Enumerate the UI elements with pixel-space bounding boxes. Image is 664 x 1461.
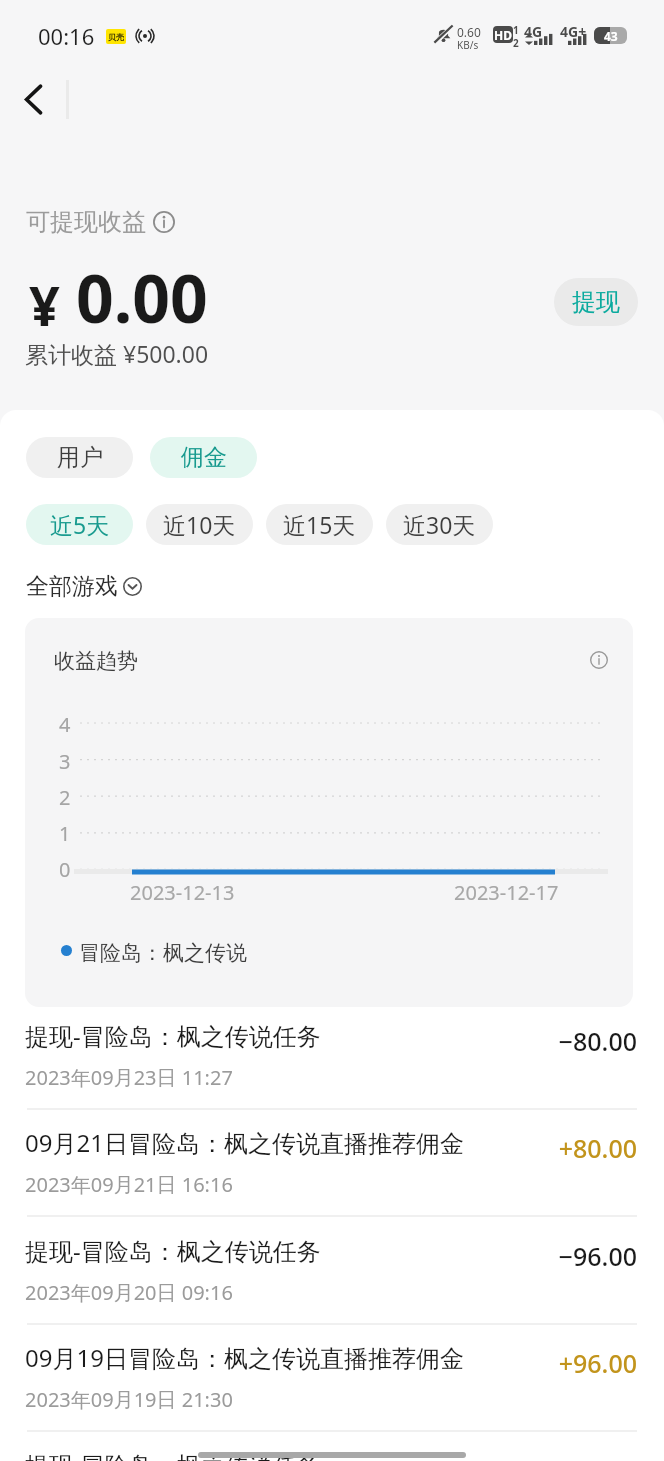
- staticText: 09月21日冒险岛：枫之传说直播推荐佣金: [25, 1126, 464, 1159]
- staticText: 4G: [524, 22, 543, 41]
- staticText: 2023年09月19日 21:30: [25, 1386, 233, 1413]
- button[interactable]: 近5天: [26, 504, 133, 545]
- staticText: 3: [59, 748, 71, 775]
- staticText: −80.00: [430, 1024, 637, 1058]
- button[interactable]: 09月21日冒险岛：枫之传说直播推荐佣金: [0, 1124, 664, 1231]
- staticText: 佣金: [181, 443, 227, 472]
- staticText: 0: [59, 856, 71, 883]
- staticText: −96.00: [430, 1239, 637, 1273]
- staticText: 2023-12-17: [454, 879, 559, 906]
- staticText: 09月19日冒险岛：枫之传说直播推荐佣金: [25, 1341, 464, 1374]
- staticText: 冒险岛：枫之传说: [79, 940, 247, 966]
- staticText: 全部游戏: [26, 572, 118, 601]
- staticText: 近15天: [283, 509, 356, 540]
- button[interactable]: 全部游戏: [26, 572, 142, 601]
- staticText: 4: [59, 711, 71, 738]
- button[interactable]: 用户: [26, 437, 133, 478]
- staticText: +96.00: [430, 1346, 637, 1380]
- button[interactable]: 提现-冒险岛：枫之传说任务: [0, 1232, 664, 1339]
- staticText: 2023年09月20日 09:16: [25, 1279, 233, 1306]
- staticText: 提现-冒险岛：枫之传说任务: [25, 1234, 321, 1267]
- staticText: 00:16: [38, 21, 95, 51]
- staticText: 用户: [57, 443, 103, 472]
- button[interactable]: Back: [4, 70, 62, 128]
- staticText: 近5天: [50, 509, 110, 540]
- staticText: 近10天: [163, 509, 236, 540]
- staticText: 可提现收益: [26, 207, 146, 237]
- staticText: 1: [59, 820, 71, 847]
- staticText: +80.00: [430, 1131, 637, 1165]
- staticText: 0.00: [76, 252, 208, 342]
- button[interactable]: 佣金: [150, 437, 257, 478]
- button[interactable]: 09月19日冒险岛：枫之传说直播推荐佣金: [0, 1339, 664, 1446]
- staticText: 4G+: [560, 22, 587, 41]
- staticText: −96.00: [430, 1453, 637, 1461]
- staticText: 2023年09月23日 11:27: [25, 1064, 233, 1091]
- button[interactable]: 近15天: [266, 504, 373, 545]
- staticText: 贝壳: [108, 32, 124, 42]
- staticText: 收益趋势: [54, 648, 138, 674]
- button[interactable]: 提现-冒险岛：枫之传说任务: [0, 1446, 664, 1461]
- staticText: 2023年09月21日 16:16: [25, 1171, 233, 1198]
- staticText: 提现-冒险岛：枫之传说任务: [25, 1448, 321, 1461]
- staticText: 0.60: [457, 24, 481, 40]
- staticText: 43: [604, 28, 618, 44]
- staticText: 近30天: [403, 509, 476, 540]
- button[interactable]: 提现: [554, 278, 638, 326]
- button[interactable]: 提现-冒险岛：枫之传说任务: [0, 1017, 664, 1124]
- staticText: 2: [59, 784, 71, 811]
- button[interactable]: 近10天: [146, 504, 253, 545]
- button[interactable]: 近30天: [386, 504, 493, 545]
- staticText: KB/s: [457, 38, 479, 52]
- staticText: 提现: [572, 287, 620, 317]
- staticText: 提现-冒险岛：枫之传说任务: [25, 1019, 321, 1052]
- staticText: 2: [513, 36, 519, 50]
- staticText: 1: [513, 23, 519, 37]
- staticText: ¥: [29, 268, 60, 342]
- staticText: 2023-12-13: [130, 879, 235, 906]
- staticText: 累计收益 ¥500.00: [25, 338, 209, 369]
- staticText: HD: [494, 27, 512, 43]
